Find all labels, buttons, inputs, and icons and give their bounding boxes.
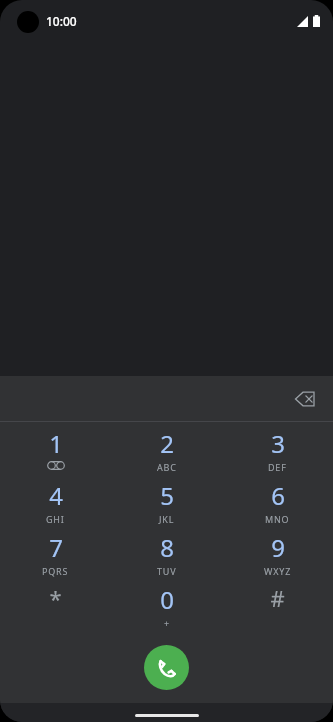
button[interactable]: # — [222, 585, 333, 626]
staticText: DEF — [268, 461, 287, 473]
staticText: 8 — [160, 531, 174, 564]
staticText: + — [164, 617, 170, 629]
button[interactable]: 8 — [111, 533, 222, 579]
staticText: PQRS — [42, 565, 69, 577]
button[interactable]: Backspace — [285, 379, 325, 419]
staticText: * — [49, 583, 62, 613]
button[interactable]: 0 — [111, 585, 222, 631]
staticText: MNO — [265, 513, 290, 525]
staticText: WXYZ — [264, 565, 292, 577]
staticText: 7 — [49, 531, 63, 564]
staticText: 1 — [49, 427, 63, 460]
button[interactable]: 7 — [0, 533, 111, 579]
button[interactable]: 2 — [111, 429, 222, 475]
button[interactable]: 1 — [0, 429, 111, 472]
button[interactable]: * — [0, 585, 111, 626]
staticText: 0 — [160, 583, 174, 616]
staticText: 10:00 — [46, 13, 77, 29]
staticText: GHI — [46, 513, 65, 525]
staticText: 4 — [49, 479, 63, 512]
button[interactable]: Call — [144, 645, 189, 690]
button[interactable]: 9 — [222, 533, 333, 579]
button[interactable]: 4 — [0, 481, 111, 527]
staticText: 9 — [271, 531, 285, 564]
button[interactable]: 5 — [111, 481, 222, 527]
staticText: # — [270, 583, 285, 613]
staticText: 5 — [160, 479, 174, 512]
staticText: TUV — [157, 565, 177, 577]
button[interactable]: 6 — [222, 481, 333, 527]
button[interactable]: 3 — [222, 429, 333, 475]
staticText: JKL — [159, 513, 175, 525]
staticText: 2 — [160, 427, 174, 460]
staticText: 6 — [271, 479, 285, 512]
staticText: ABC — [157, 461, 177, 473]
staticText: 3 — [271, 427, 285, 460]
